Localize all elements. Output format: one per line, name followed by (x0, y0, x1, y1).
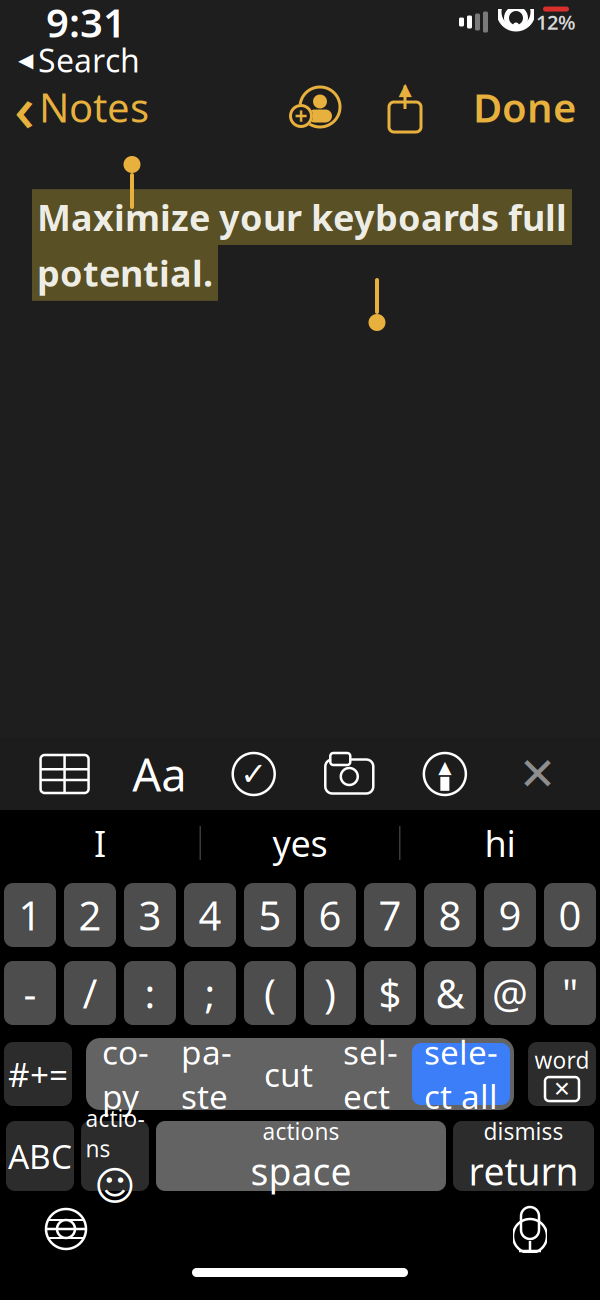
staticText: Aa (132, 744, 186, 804)
button[interactable]: Markup (415, 746, 475, 802)
button[interactable]: / (64, 961, 116, 1025)
button[interactable]: yes (201, 816, 399, 870)
button[interactable]: - (4, 961, 56, 1025)
staticText: 8 (438, 888, 461, 941)
button[interactable]: Done (463, 77, 586, 137)
button[interactable]: ABC (6, 1121, 74, 1191)
staticText: paste (181, 1030, 232, 1118)
button[interactable]: 1 (4, 883, 56, 947)
staticText: return (468, 1146, 578, 1196)
staticText: ) (324, 966, 336, 1019)
staticText: 12% (536, 9, 576, 35)
button[interactable]: 9 (484, 883, 536, 947)
staticText: 6 (318, 888, 341, 941)
staticText: 3 (138, 888, 161, 941)
button[interactable]: actions (156, 1121, 446, 1191)
button[interactable]: 0 (544, 883, 596, 947)
staticText: 7 (378, 888, 401, 941)
button[interactable]: Share (383, 79, 427, 135)
staticText: - (23, 966, 36, 1019)
button[interactable]: Dictation (504, 1201, 556, 1257)
button[interactable]: Camera (318, 746, 380, 802)
staticText: Search (38, 39, 140, 81)
staticText: " (562, 966, 578, 1019)
button[interactable]: Next Keyboard (40, 1203, 92, 1255)
button[interactable]: select all (412, 1043, 510, 1105)
staticText: + (294, 101, 307, 131)
button[interactable]: ◀ (0, 37, 140, 83)
staticText: ✓ (240, 756, 267, 792)
staticText: ; (204, 966, 215, 1019)
staticText: #+= (8, 1052, 68, 1096)
button[interactable]: 5 (244, 883, 296, 947)
staticText: ✕ (553, 1077, 571, 1101)
staticText: / (82, 966, 97, 1019)
staticText: ABC (8, 1134, 72, 1178)
button[interactable]: ‹ (0, 77, 149, 137)
staticText: hi (484, 819, 515, 867)
button[interactable]: 8 (424, 883, 476, 947)
staticText: Done (473, 80, 576, 133)
staticText: ◀ (18, 49, 33, 71)
button[interactable]: : (124, 961, 176, 1025)
staticText: ▲ (438, 757, 451, 777)
staticText: select (343, 1030, 398, 1118)
staticText: : (144, 966, 155, 1019)
staticText: cut (264, 1052, 313, 1096)
button[interactable]: cut (248, 1042, 329, 1106)
button[interactable]: Format (129, 746, 189, 802)
button[interactable]: $ (364, 961, 416, 1025)
staticText: ( (264, 966, 276, 1019)
staticText: actions (85, 1103, 144, 1163)
staticText: dismiss (483, 1116, 563, 1146)
button[interactable]: Add People (283, 79, 345, 135)
button[interactable]: Table (35, 746, 95, 802)
staticText: & (435, 966, 464, 1019)
staticText: 4 (198, 888, 221, 941)
button[interactable]: @ (484, 961, 536, 1025)
staticText: 9:31 (46, 0, 126, 48)
button[interactable]: dismiss (453, 1121, 594, 1191)
button[interactable]: 6 (304, 883, 356, 947)
button[interactable]: paste (165, 1042, 248, 1106)
button[interactable]: & (424, 961, 476, 1025)
staticText: space (250, 1146, 351, 1196)
button[interactable]: I (0, 816, 199, 870)
staticText: 9 (498, 888, 521, 941)
button[interactable]: ; (184, 961, 236, 1025)
button[interactable]: select (329, 1042, 412, 1106)
staticText: word (534, 1045, 589, 1075)
button[interactable]: ) (304, 961, 356, 1025)
button[interactable]: copy (86, 1042, 165, 1106)
staticText: 2 (78, 888, 101, 941)
button[interactable]: 3 (124, 883, 176, 947)
staticText: 5 (258, 888, 281, 941)
button[interactable]: Emoji (81, 1121, 149, 1191)
button[interactable]: Close (509, 746, 565, 802)
staticText: select all (424, 1030, 498, 1118)
staticText: I (94, 819, 106, 867)
button[interactable]: 4 (184, 883, 236, 947)
button[interactable]: " (544, 961, 596, 1025)
staticText: 0 (558, 888, 581, 941)
staticText: potential. (37, 249, 213, 297)
button[interactable]: ( (244, 961, 296, 1025)
button[interactable]: Checklist (224, 746, 284, 802)
button[interactable]: Delete (528, 1042, 596, 1106)
staticText: copy (102, 1030, 149, 1118)
staticText: Maximize your keyboards full (37, 193, 567, 241)
staticText: ▲ (398, 79, 411, 99)
staticText: $ (378, 966, 401, 1019)
staticText: actions (262, 1116, 339, 1146)
button[interactable]: hi (400, 816, 599, 870)
staticText: ☺ (94, 1163, 136, 1209)
staticText: yes (272, 819, 327, 867)
staticText: Notes (39, 80, 149, 133)
staticText: 1 (18, 888, 41, 941)
button[interactable]: 7 (364, 883, 416, 947)
staticText: ✕ (518, 748, 556, 800)
staticText: @ (492, 966, 528, 1019)
staticText: ‹ (14, 64, 35, 149)
button[interactable]: #+= (4, 1042, 72, 1106)
button[interactable]: 2 (64, 883, 116, 947)
